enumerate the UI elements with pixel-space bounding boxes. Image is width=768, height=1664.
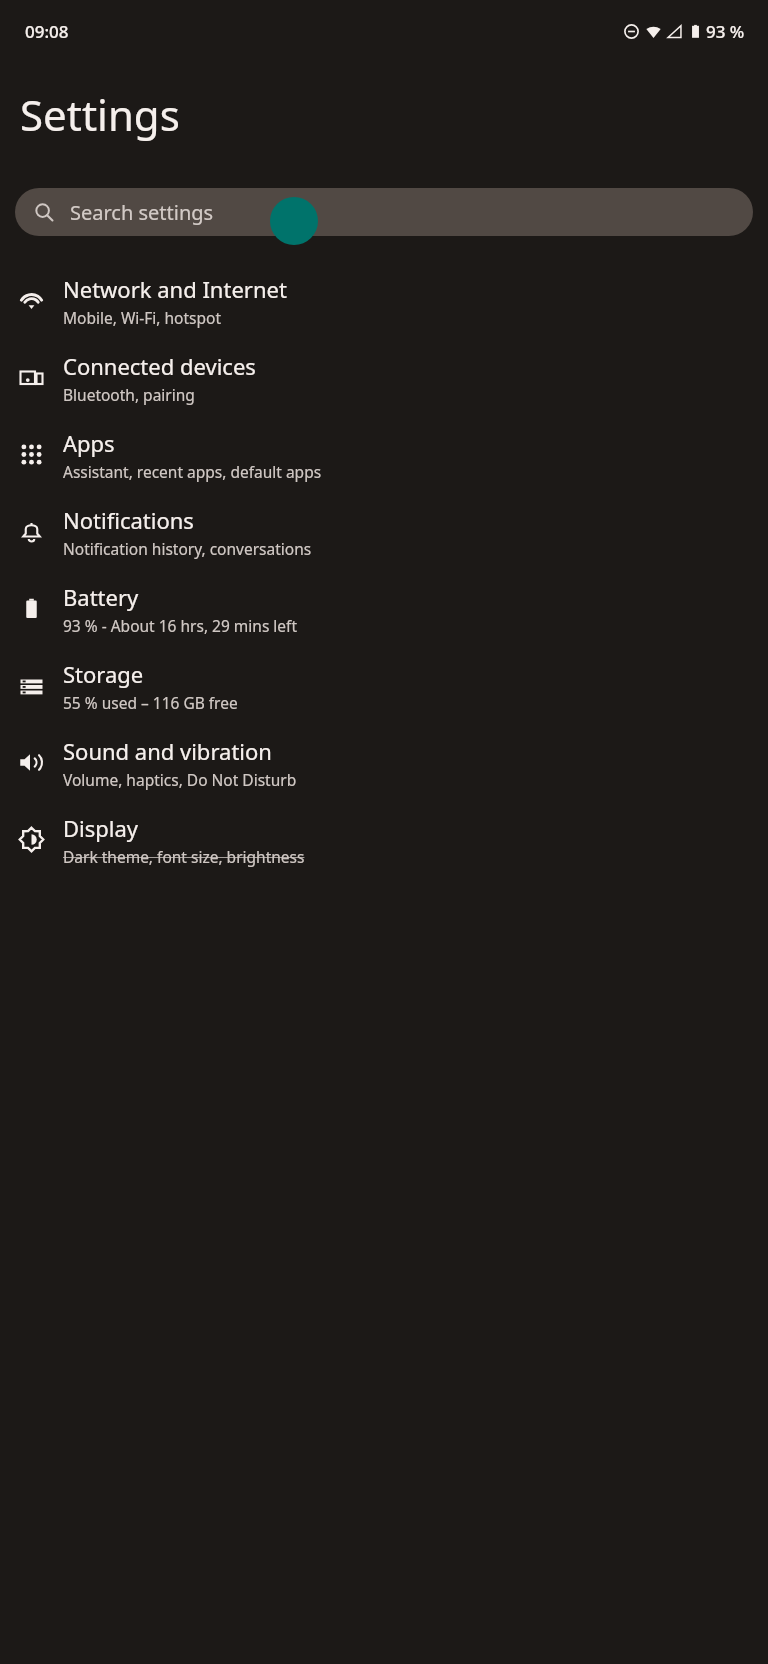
button[interactable]: Sound and vibration [0, 724, 768, 801]
button[interactable]: Notifications [0, 493, 768, 570]
staticText: Assistant, recent apps, default apps [63, 461, 322, 482]
staticText: 93 % [706, 20, 745, 43]
button[interactable]: Network and Internet [0, 262, 768, 339]
staticText: Connected devices [63, 351, 256, 381]
staticText: Apps [63, 428, 115, 458]
staticText: Notifications [63, 505, 194, 535]
staticText: Bluetooth, pairing [63, 384, 195, 405]
button[interactable]: Search settings [15, 188, 753, 236]
button[interactable]: Display [0, 801, 768, 878]
staticText: Battery [63, 582, 139, 612]
staticText: 55 % used – 116 GB free [63, 692, 238, 713]
button[interactable]: Battery [0, 570, 768, 647]
staticText: Volume, haptics, Do Not Disturb [63, 769, 297, 790]
staticText: Network and Internet [63, 274, 287, 304]
staticText: Mobile, Wi-Fi, hotspot [63, 307, 222, 328]
button[interactable]: Apps [0, 416, 768, 493]
staticText: 09:08 [25, 20, 69, 43]
staticText: Display [63, 813, 139, 843]
staticText: Sound and vibration [63, 736, 272, 766]
button[interactable]: Storage [0, 647, 768, 724]
staticText: Settings [20, 86, 180, 143]
staticText: Dark theme, font size, brightness [63, 846, 305, 867]
staticText: Search settings [70, 199, 214, 226]
staticText: 93 % - About 16 hrs, 29 mins left [63, 615, 298, 636]
staticText: Storage [63, 659, 144, 689]
staticText: Notification history, conversations [63, 538, 312, 559]
button[interactable]: Connected devices [0, 339, 768, 416]
